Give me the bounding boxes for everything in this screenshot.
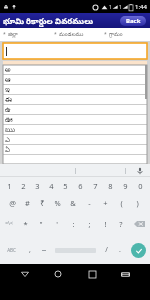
staticText: * <box>104 31 107 38</box>
staticText: ( <box>120 198 123 208</box>
staticText: + <box>103 198 108 208</box>
button[interactable]: Back <box>120 16 146 26</box>
button[interactable]: ఊ <box>3 115 147 125</box>
staticText: 6 <box>78 181 83 191</box>
staticText: 1:44 <box>135 3 147 11</box>
button[interactable]: & <box>65 194 81 211</box>
button[interactable]: * <box>18 211 33 236</box>
button[interactable]: ? <box>113 211 129 236</box>
staticText: 9 <box>123 181 128 191</box>
staticText: 3 <box>35 181 40 191</box>
staticText: గ్రామం <box>109 31 123 38</box>
button[interactable]: 5 <box>58 177 73 194</box>
button[interactable]: ఇ <box>3 85 147 95</box>
button[interactable]: ; <box>81 211 97 236</box>
staticText: ; <box>88 219 91 229</box>
button[interactable]: - <box>81 194 97 211</box>
button[interactable]: అ <box>3 65 147 75</box>
staticText: # <box>25 198 30 208</box>
button[interactable]: Voice input <box>135 166 145 176</box>
button[interactable]: 8 <box>103 177 118 194</box>
staticText: 0 <box>138 181 143 191</box>
staticText: , <box>29 245 31 255</box>
staticText: / <box>105 245 108 255</box>
button[interactable]: Enter <box>131 243 146 258</box>
button[interactable]: ఋ <box>3 125 147 135</box>
staticText: ) <box>136 198 139 208</box>
button[interactable]: . <box>113 236 126 264</box>
button[interactable]: " <box>33 211 49 236</box>
button[interactable]: 6 <box>73 177 88 194</box>
button[interactable]: 3 <box>30 177 44 194</box>
staticText: * <box>23 219 28 229</box>
button[interactable]: ( <box>113 194 129 211</box>
staticText: ? <box>119 219 123 229</box>
button[interactable]: @ <box>5 194 20 211</box>
button[interactable]: 7 <box>88 177 103 194</box>
staticText: % <box>54 198 61 208</box>
staticText: : <box>72 219 75 229</box>
button[interactable]: Switch keyboard <box>117 266 133 282</box>
button[interactable]: Recents <box>84 266 100 282</box>
button[interactable]: =\< <box>0 211 18 236</box>
button[interactable]: Emoji <box>37 236 50 264</box>
staticText: & <box>70 198 76 208</box>
staticText: ఈ <box>5 96 12 105</box>
staticText: ఇ <box>5 86 10 95</box>
button[interactable]: ) <box>129 194 145 211</box>
staticText: 5 <box>63 181 68 191</box>
button[interactable]: ఈ <box>3 95 147 105</box>
button[interactable]: / <box>100 236 113 264</box>
button[interactable]: Space <box>50 236 100 264</box>
button[interactable]: ' <box>49 211 65 236</box>
staticText: - <box>88 198 91 208</box>
button[interactable]: Home <box>50 266 66 282</box>
button[interactable]: * <box>3 31 54 38</box>
staticText: ఆ <box>5 76 11 85</box>
button[interactable]: ఏ <box>3 145 147 155</box>
staticText: జిల్లా <box>8 31 18 38</box>
button[interactable]: ABC <box>0 236 23 264</box>
staticText: " <box>39 219 43 229</box>
staticText: ఉ <box>5 106 11 115</box>
staticText: ఏ <box>5 146 10 155</box>
staticText: * <box>3 31 6 38</box>
button[interactable]: Backspace <box>129 211 150 236</box>
staticText: ₹ <box>40 198 45 208</box>
button[interactable] <box>3 43 147 59</box>
button[interactable]: , <box>23 236 37 264</box>
staticText: Back <box>126 17 141 25</box>
button[interactable]: 4 <box>44 177 58 194</box>
staticText: అ <box>5 66 11 75</box>
staticText: మండలము <box>59 31 84 38</box>
staticText: 8 <box>108 181 113 191</box>
button[interactable] <box>100 164 150 177</box>
button[interactable]: % <box>50 194 65 211</box>
staticText: 1 <box>7 181 12 191</box>
button[interactable] <box>0 164 50 177</box>
button[interactable]: ఉ <box>3 105 147 115</box>
staticText: ' <box>56 219 58 229</box>
staticText: 1 <box>109 4 112 10</box>
staticText: 2 <box>21 181 26 191</box>
staticText: ఎ <box>5 136 10 145</box>
button[interactable]: 9 <box>118 177 133 194</box>
button[interactable]: : <box>65 211 81 236</box>
button[interactable]: * <box>54 31 104 38</box>
button[interactable]: # <box>20 194 35 211</box>
staticText: 1 <box>119 4 122 10</box>
button[interactable]: ఆ <box>3 75 147 85</box>
button[interactable]: ఎ <box>3 135 147 145</box>
button[interactable]: 0 <box>133 177 148 194</box>
button[interactable]: ₹ <box>35 194 50 211</box>
button[interactable]: * <box>104 31 147 38</box>
button[interactable]: + <box>97 194 113 211</box>
staticText: భూమి రికార్డుల వివరములు <box>3 15 94 27</box>
button[interactable] <box>50 164 100 177</box>
button[interactable]: Back <box>17 266 33 282</box>
staticText: * <box>54 31 57 38</box>
button[interactable]: 1 <box>2 177 16 194</box>
button[interactable]: 2 <box>16 177 30 194</box>
staticText: ఊ <box>5 116 13 125</box>
button[interactable]: ! <box>97 211 113 236</box>
